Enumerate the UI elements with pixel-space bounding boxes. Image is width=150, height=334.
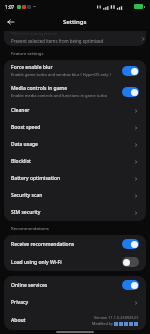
staticText: Recommendations	[11, 225, 49, 231]
button[interactable]: Toggle on	[122, 66, 139, 76]
button[interactable]: SIM security	[4, 204, 146, 221]
staticText: Feature settings	[11, 50, 44, 56]
button[interactable]: Media controls in game	[4, 81, 146, 102]
button[interactable]: Blocklist	[4, 153, 146, 170]
staticText: Online services	[11, 282, 48, 289]
staticText: Blocklist	[11, 158, 133, 165]
button[interactable]: Whitelist management	[4, 31, 146, 46]
staticText: Modified by	[92, 321, 114, 326]
button[interactable]: Security scan	[4, 187, 146, 204]
button[interactable]: Online services	[4, 276, 146, 294]
button[interactable]: Privacy	[4, 294, 146, 311]
button[interactable]: Force enable blur	[4, 60, 146, 81]
button[interactable]: Toggle on	[122, 87, 139, 97]
staticText: Media controls in game	[11, 85, 68, 92]
button[interactable]: Battery optimisation	[4, 170, 146, 187]
button[interactable]: About	[4, 311, 146, 330]
button[interactable]: Toggle off	[122, 257, 139, 267]
button[interactable]: Data usage	[4, 136, 146, 153]
staticText: Privacy	[11, 299, 133, 306]
staticText: Load using only Wi-Fi	[11, 259, 62, 266]
staticText: Version 11.1.5-250925.01	[94, 315, 139, 320]
button[interactable]: Receive recommendations	[4, 235, 146, 253]
staticText: Boost speed	[11, 124, 133, 131]
staticText: Enable media controls and functions in g…	[11, 93, 108, 98]
staticText: Battery optimisation	[11, 175, 133, 182]
button[interactable]: Toggle on	[122, 280, 139, 290]
button[interactable]: Cleaner	[4, 102, 146, 119]
staticText: Force enable blur	[11, 64, 53, 71]
staticText: 1:07	[5, 4, 15, 10]
staticText: SIM security	[11, 209, 133, 216]
staticText: Enable game turbo and window blur ( Hype…	[11, 72, 111, 77]
staticText: Data usage	[11, 141, 133, 148]
staticText: About	[11, 317, 92, 324]
button[interactable]: Load using only Wi-Fi	[4, 253, 146, 271]
button[interactable]: Boost speed	[4, 119, 146, 136]
staticText: Cleaner	[11, 107, 133, 114]
staticText: Whitelist management	[11, 31, 57, 37]
staticText: Prevent selected items from being optimi…	[11, 38, 104, 44]
staticText: Settings	[63, 18, 87, 26]
staticText: Security scan	[11, 192, 133, 199]
staticText: Receive recommendations	[11, 241, 75, 248]
button[interactable]: Back	[4, 15, 17, 28]
button[interactable]: Toggle on	[122, 239, 139, 249]
